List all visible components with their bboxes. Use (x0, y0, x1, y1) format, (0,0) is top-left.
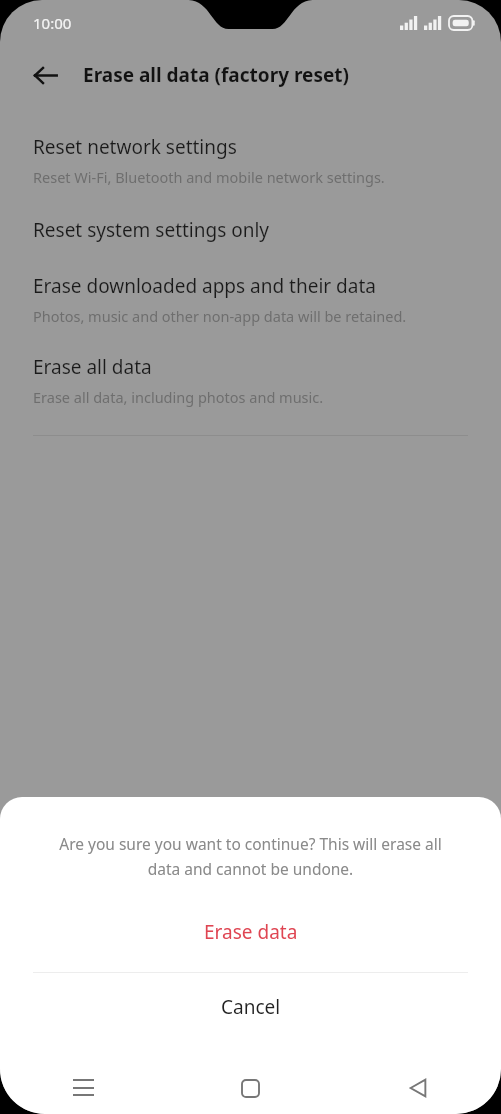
staticText: Erase downloaded apps and their data (33, 273, 376, 299)
staticText: Photos, music and other non-app data wil… (33, 306, 407, 326)
button[interactable]: Erase data (0, 905, 501, 959)
button[interactable]: Home (167, 1062, 334, 1114)
button[interactable]: Reset network settings (0, 134, 501, 187)
staticText: Erase all data (33, 354, 152, 380)
staticText: Erase all data, including photos and mus… (33, 387, 324, 407)
button[interactable]: Erase all data (0, 354, 501, 407)
staticText: Reset network settings (33, 134, 237, 160)
staticText: Are you sure you want to continue? This … (48, 833, 453, 879)
staticText: Erase all data (factory reset) (83, 62, 349, 88)
button[interactable]: Back (23, 53, 67, 97)
staticText: Reset Wi-Fi, Bluetooth and mobile networ… (33, 167, 385, 187)
button[interactable]: Recent apps (0, 1062, 167, 1114)
staticText: Erase data (204, 919, 298, 945)
button[interactable]: Cancel (0, 973, 501, 1041)
staticText: 10:00 (33, 13, 72, 33)
staticText: Reset system settings only (33, 217, 270, 243)
staticText: Cancel (221, 994, 281, 1020)
button[interactable]: Reset system settings only (0, 217, 501, 243)
button[interactable]: Erase downloaded apps and their data (0, 273, 501, 326)
button[interactable]: Back (334, 1062, 501, 1114)
